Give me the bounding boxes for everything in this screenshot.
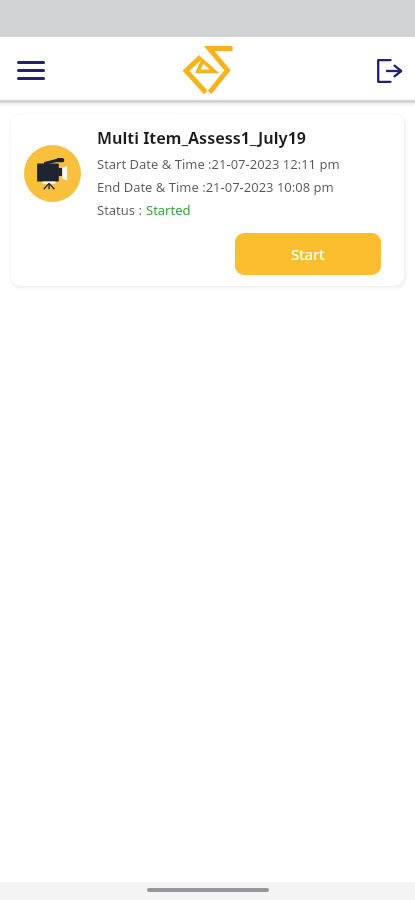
button[interactable]: Menu <box>5 44 57 96</box>
staticText: End Date & Time :21-07-2023 10:08 pm <box>97 178 334 196</box>
button[interactable]: Multi Item_Assess1_July19 <box>11 114 404 286</box>
staticText: Multi Item_Assess1_July19 <box>97 127 306 149</box>
staticText: Started <box>146 201 191 219</box>
staticText: Start <box>291 244 325 264</box>
staticText: Start Date & Time :21-07-2023 12:11 pm <box>97 155 340 173</box>
staticText: Status : <box>97 201 146 219</box>
button[interactable]: Start <box>235 233 381 275</box>
button[interactable]: Logout <box>364 45 415 97</box>
